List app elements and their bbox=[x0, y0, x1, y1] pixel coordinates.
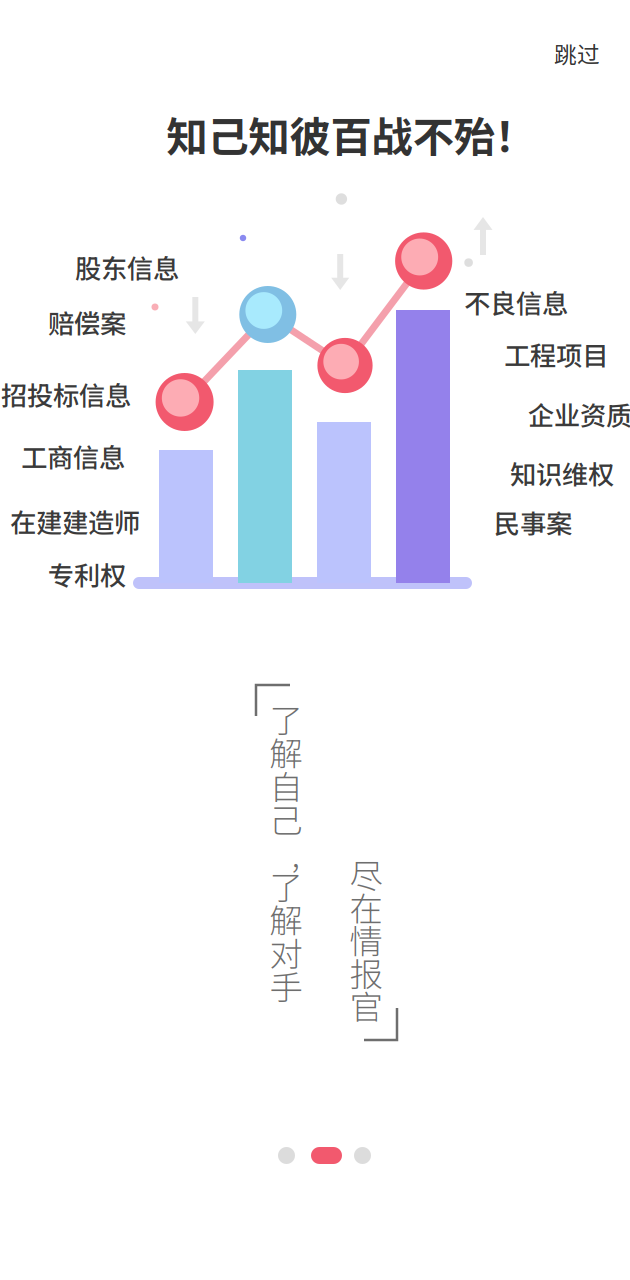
staticText: 对 bbox=[269, 928, 302, 976]
staticText: 官 bbox=[349, 981, 382, 1029]
staticText: 知己知彼百战不殆！ bbox=[166, 104, 535, 164]
staticText: 跳过 bbox=[554, 37, 600, 69]
staticText: 工程项目 bbox=[504, 335, 608, 373]
staticText: , bbox=[291, 828, 299, 877]
staticText: 知识维权 bbox=[510, 454, 614, 492]
staticText: 了 bbox=[269, 694, 302, 742]
staticText: 招投标信息 bbox=[1, 375, 131, 413]
staticText: 民事案 bbox=[494, 503, 572, 541]
staticText: 在 bbox=[349, 883, 382, 931]
staticText: 自 bbox=[269, 761, 302, 809]
staticText: 企业资质 bbox=[528, 395, 630, 433]
staticText: 报 bbox=[349, 948, 382, 997]
button[interactable]: 跳过 bbox=[531, 22, 623, 84]
staticText: 尽 bbox=[349, 850, 382, 898]
staticText: 情 bbox=[349, 915, 382, 964]
staticText: 股东信息 bbox=[75, 248, 179, 286]
staticText: 己 bbox=[269, 794, 302, 843]
staticText: 工商信息 bbox=[21, 437, 125, 475]
staticText: 了 bbox=[269, 861, 302, 909]
staticText: 专利权 bbox=[48, 555, 126, 593]
staticText: 在建建造师 bbox=[10, 502, 140, 540]
staticText: 解 bbox=[269, 728, 302, 776]
staticText: 手 bbox=[269, 961, 302, 1010]
staticText: 不良信息 bbox=[464, 283, 568, 321]
staticText: 赔偿案 bbox=[48, 303, 126, 341]
staticText: 解 bbox=[269, 895, 302, 943]
